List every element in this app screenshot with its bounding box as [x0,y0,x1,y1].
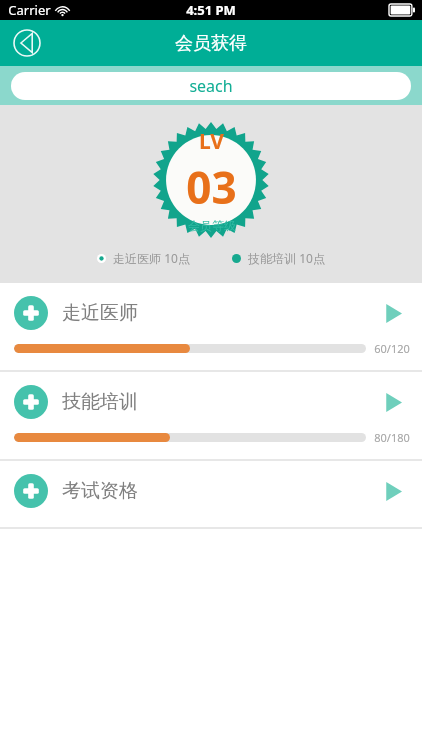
staticText: 80/180 [374,430,410,445]
staticText: seach [189,75,233,97]
staticText: 技能培训 [62,390,138,414]
staticText: 会员等级 [188,218,236,233]
button[interactable]: Play 考试资格 [378,476,408,506]
staticText: 考试资格 [62,479,138,503]
staticText: LV [199,127,224,156]
staticText: 技能培训 10点 [248,250,325,266]
button[interactable]: 考试资格 [0,461,422,527]
button[interactable]: 技能培训 [0,372,422,459]
button[interactable]: Play 走近医师 [378,298,408,328]
staticText: 会员获得 [175,32,247,55]
button[interactable]: seach [11,72,411,100]
button[interactable]: Play 技能培训 [378,387,408,417]
staticText: Carrier [8,1,51,19]
staticText: 走近医师 10点 [113,250,190,266]
staticText: 60/120 [374,341,410,356]
button[interactable]: Back [10,26,44,60]
staticText: 4:51 PM [186,1,236,19]
button[interactable]: 走近医师 [0,283,422,370]
staticText: 03 [186,157,237,217]
staticText: 走近医师 [62,301,138,325]
